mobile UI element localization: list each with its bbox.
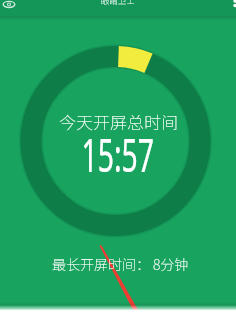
staticText: 眼睛卫士 (101, 0, 136, 6)
staticText: 今天开屏总时间 (59, 109, 178, 134)
staticText: 最长开屏时间： 8分钟 (52, 254, 189, 274)
button[interactable] (0, 0, 22, 16)
button[interactable] (228, 0, 236, 16)
staticText: 15:57 (81, 124, 155, 185)
